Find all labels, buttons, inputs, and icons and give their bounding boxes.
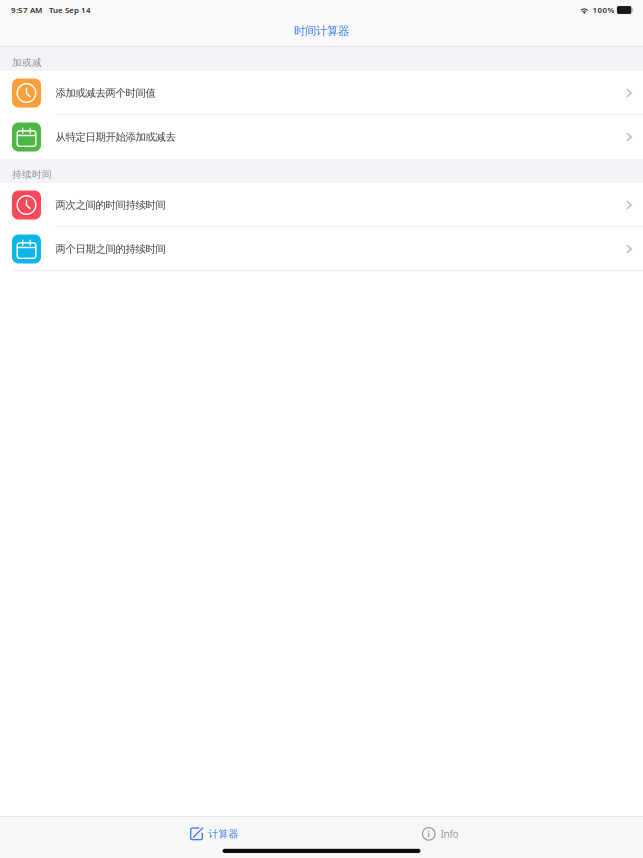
button[interactable]: 两次之间的时间持续时间	[0, 183, 643, 227]
staticText: 计算器	[208, 828, 238, 840]
staticText: 两个日期之间的持续时间	[55, 242, 165, 255]
staticText: 加或减	[12, 56, 42, 68]
staticText: 时间计算器	[294, 24, 349, 38]
staticText: 两次之间的时间持续时间	[55, 198, 165, 211]
button[interactable]: 两个日期之间的持续时间	[0, 227, 643, 271]
staticText: 添加或减去两个时间值	[55, 86, 155, 99]
staticText: 100%	[592, 5, 614, 15]
staticText: Info	[440, 827, 458, 841]
staticText: 从特定日期开始添加或减去	[55, 130, 175, 143]
button[interactable]: Info	[410, 821, 470, 847]
staticText: Tue Sep 14	[49, 5, 91, 15]
staticText: 9:57 AM	[11, 5, 42, 15]
button[interactable]: 从特定日期开始添加或减去	[0, 115, 643, 159]
button[interactable]: 计算器	[178, 821, 250, 847]
staticText: 持续时间	[12, 168, 52, 180]
button[interactable]: 添加或减去两个时间值	[0, 71, 643, 115]
